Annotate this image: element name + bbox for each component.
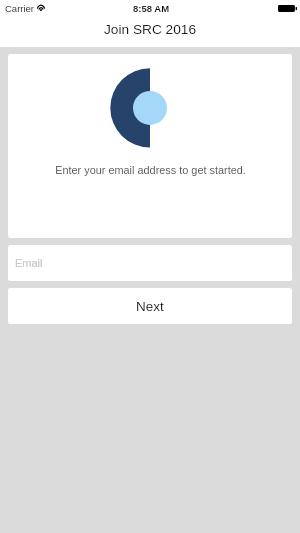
other: Battery full <box>278 5 297 12</box>
other: Wi-Fi signal <box>37 4 45 11</box>
staticText: Next <box>136 299 164 314</box>
staticText: Enter your email address to get started. <box>55 164 246 176</box>
button[interactable]: Email <box>8 245 292 281</box>
button[interactable]: Next <box>8 288 292 324</box>
other: SRC logo <box>8 54 292 238</box>
staticText: Carrier <box>5 3 35 14</box>
staticText: Join SRC 2016 <box>104 22 197 37</box>
staticText: 8:58 AM <box>133 3 170 14</box>
staticText: Email <box>15 257 43 269</box>
